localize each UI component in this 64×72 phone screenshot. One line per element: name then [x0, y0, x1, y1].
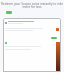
- staticText: Redeem your Scopio coins instantly to ri…: [1, 2, 63, 9]
- button[interactable]: [6, 11, 12, 14]
- button[interactable]: [51, 37, 57, 39]
